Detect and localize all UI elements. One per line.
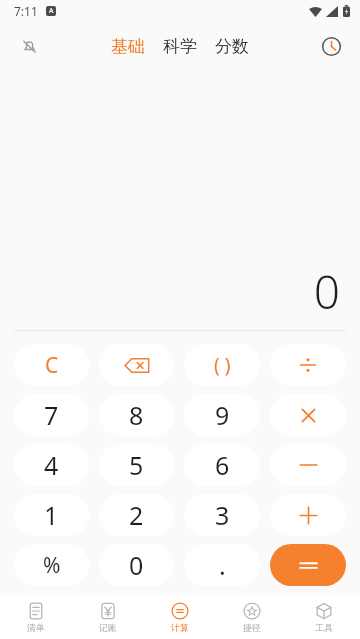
button[interactable]: 7 <box>14 394 89 436</box>
staticText: 捷径 <box>243 622 261 633</box>
staticText: 7:11 <box>14 3 38 19</box>
button[interactable]: 6 <box>184 444 260 486</box>
staticText: % <box>43 551 61 580</box>
button[interactable]: 8 <box>99 394 174 436</box>
button[interactable]: 1 <box>14 494 89 536</box>
button[interactable]: 记账 <box>72 595 144 639</box>
button[interactable]: Sound off <box>12 29 46 63</box>
button[interactable]: 5 <box>99 444 174 486</box>
button[interactable]: 分数 <box>213 32 251 61</box>
button[interactable]: 计算 <box>144 595 216 639</box>
button[interactable]: 9 <box>184 394 260 436</box>
button[interactable]: 4 <box>14 444 89 486</box>
button[interactable]: 0 <box>99 544 174 586</box>
staticText: 8 <box>129 398 144 432</box>
staticText: 0 <box>313 260 340 323</box>
button[interactable]: Backspace <box>99 344 174 386</box>
button[interactable]: 清单 <box>0 595 72 639</box>
staticText: . <box>219 548 226 582</box>
staticText: 9 <box>215 398 230 432</box>
staticText: 1 <box>44 498 59 532</box>
button[interactable]: % <box>14 544 89 586</box>
button[interactable]: ( ) <box>184 344 260 386</box>
staticText: A <box>49 6 54 16</box>
button[interactable]: 2 <box>99 494 174 536</box>
button[interactable]: Minus <box>270 444 346 486</box>
button[interactable]: Multiply <box>270 394 346 436</box>
staticText: C <box>45 351 59 380</box>
staticText: 7 <box>44 398 59 432</box>
staticText: 计算 <box>171 622 189 633</box>
staticText: 工具 <box>315 622 333 633</box>
staticText: 2 <box>129 498 144 532</box>
staticText: 科学 <box>163 36 197 57</box>
button[interactable]: . <box>184 544 260 586</box>
button[interactable]: C <box>14 344 89 386</box>
button[interactable]: 基础 <box>109 32 147 61</box>
button[interactable]: 工具 <box>288 595 360 639</box>
button[interactable]: Plus <box>270 494 346 536</box>
staticText: 0 <box>129 548 144 582</box>
button[interactable]: History <box>314 29 348 63</box>
staticText: 清单 <box>27 622 45 633</box>
button[interactable]: 3 <box>184 494 260 536</box>
staticText: 4 <box>44 448 59 482</box>
staticText: 记账 <box>99 622 117 633</box>
staticText: 5 <box>129 448 144 482</box>
staticText: 基础 <box>111 36 145 57</box>
button[interactable]: Divide <box>270 344 346 386</box>
button[interactable]: 科学 <box>161 32 199 61</box>
staticText: 6 <box>215 448 230 482</box>
staticText: 3 <box>215 498 230 532</box>
button[interactable]: 捷径 <box>216 595 288 639</box>
button[interactable]: Equals <box>270 544 346 586</box>
staticText: 分数 <box>215 36 249 57</box>
staticText: ( ) <box>214 352 231 378</box>
